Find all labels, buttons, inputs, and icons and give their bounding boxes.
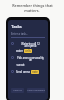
button[interactable]: Clear all: [11, 88, 24, 93]
staticText: Pick arena personality on: [16, 56, 45, 62]
staticText: sunset: [16, 63, 25, 67]
button[interactable]: Toggle task: [11, 42, 45, 53]
button[interactable]: Enter a task…: [11, 32, 45, 38]
other: Toggle task: [11, 56, 14, 59]
button[interactable]: Toggle task: [11, 56, 45, 67]
staticText: Remember things that: [12, 3, 53, 8]
staticText: Clear all: [13, 89, 22, 92]
staticText: Send arena: [16, 70, 30, 74]
staticText: note: [32, 70, 38, 74]
staticText: cells: [25, 49, 31, 53]
staticText: Watering all 12 aeroponic: [16, 42, 45, 48]
staticText: Tasks: [11, 24, 22, 29]
staticText: matters.: [24, 8, 40, 13]
other: Toggle task: [11, 42, 14, 45]
button[interactable]: Clear completed: [27, 88, 45, 93]
staticText: Enter a task…: [11, 32, 28, 36]
button[interactable]: Toggle task: [11, 70, 45, 74]
staticText: water: [16, 49, 23, 53]
staticText: Clear completed: [27, 89, 45, 92]
other: Toggle task: [11, 70, 14, 73]
